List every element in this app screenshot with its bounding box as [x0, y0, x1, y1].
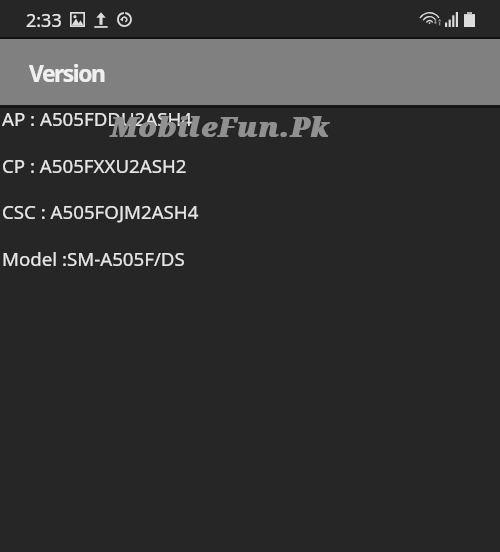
staticText: MobileFun.Pk — [111, 107, 330, 145]
staticText: Version — [29, 58, 105, 89]
other: Mobile signal — [445, 12, 458, 27]
other: Battery full — [464, 12, 475, 27]
button[interactable]: Version — [0, 39, 500, 106]
staticText: AP : A505FDDU2ASH4 — [2, 106, 193, 131]
button[interactable]: CSC : A505FOJM2ASH4 — [0, 191, 500, 231]
button[interactable]: AP : A505FDDU2ASH4 — [0, 98, 500, 138]
staticText: MobileFun.Pk — [110, 107, 329, 145]
other: Software update — [117, 12, 132, 27]
button[interactable]: CP : A505FXXU2ASH2 — [0, 145, 500, 185]
other: Uploading — [94, 12, 108, 28]
staticText: Model :SM-A505F/DS — [2, 246, 185, 271]
button[interactable]: Model :SM-A505F/DS — [0, 238, 500, 278]
other: Screenshot captured — [70, 12, 85, 27]
staticText: CSC : A505FOJM2ASH4 — [2, 199, 199, 224]
staticText: 2:33 — [26, 8, 62, 33]
staticText: CP : A505FXXU2ASH2 — [2, 153, 187, 178]
other: Wi-Fi connected — [421, 11, 441, 24]
